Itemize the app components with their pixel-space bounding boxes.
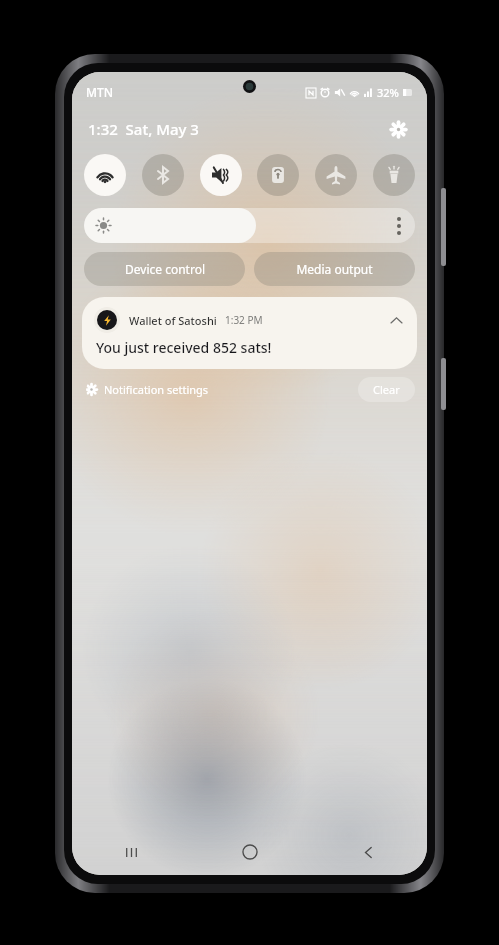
button[interactable]: Wi-Fi (84, 154, 126, 196)
button[interactable]: Clear (358, 377, 415, 402)
staticText: Device control (125, 261, 205, 277)
staticText: You just received 852 sats! (96, 338, 272, 357)
button[interactable]: Flashlight (373, 154, 415, 196)
button[interactable]: Settings (383, 114, 413, 144)
staticText: 1:32 PM (225, 313, 263, 327)
button[interactable]: Device control (84, 252, 245, 286)
button[interactable]: Auto rotate lock (257, 154, 299, 196)
button[interactable]: Back (309, 829, 427, 875)
button[interactable]: Airplane mode (315, 154, 357, 196)
staticText: 32% (377, 85, 399, 100)
staticText: Clear (373, 382, 400, 397)
button[interactable]: Bluetooth (142, 154, 184, 196)
staticText: Media output (296, 261, 373, 277)
staticText: MTN (86, 84, 114, 100)
button[interactable]: Brightness (84, 208, 415, 243)
staticText: 1:32 Sat, May 3 (88, 119, 199, 139)
staticText: Notification settings (104, 382, 209, 397)
button[interactable]: Media output (254, 252, 415, 286)
button[interactable]: Sound mode (200, 154, 242, 196)
button[interactable]: Recents (72, 829, 191, 875)
staticText: Wallet of Satoshi (129, 313, 217, 328)
button[interactable]: Notification settings (86, 379, 209, 400)
button[interactable]: Wallet of Satoshi (82, 297, 417, 369)
button[interactable]: Home (191, 829, 309, 875)
button[interactable]: Collapse (385, 309, 407, 331)
